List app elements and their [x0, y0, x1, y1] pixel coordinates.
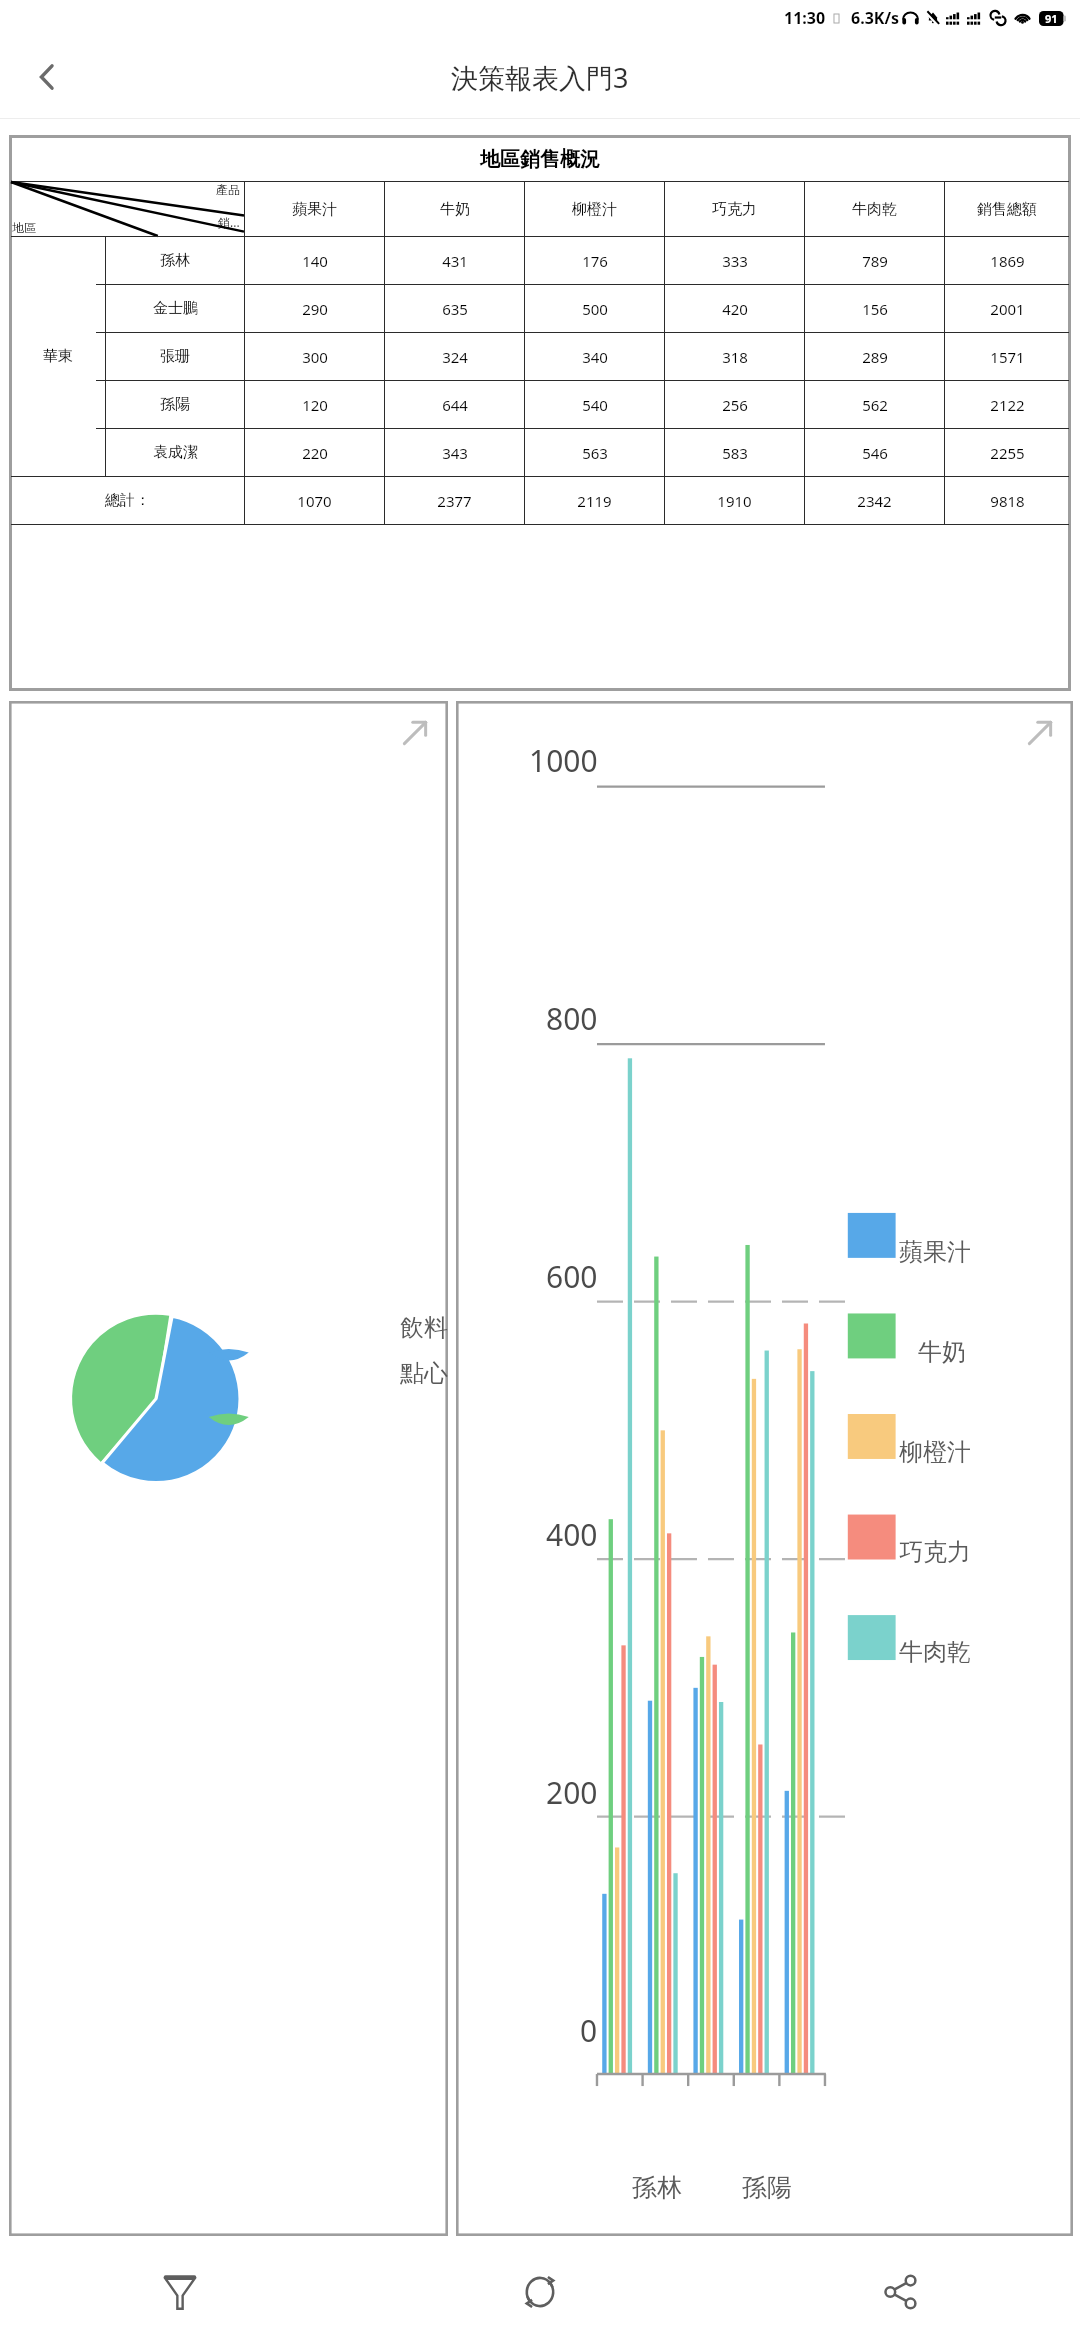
- staticText: 6.3K/s: [851, 7, 900, 29]
- staticText: 牛肉乾: [899, 1637, 971, 1667]
- staticText: 11:30: [784, 7, 826, 29]
- staticText: 176: [582, 251, 608, 271]
- staticText: 2122: [990, 395, 1025, 415]
- staticText: 324: [442, 347, 468, 367]
- staticText: 2377: [437, 491, 472, 511]
- staticText: 140: [302, 251, 328, 271]
- staticText: 400: [546, 1514, 598, 1555]
- staticText: 牛肉乾: [852, 200, 897, 219]
- staticText: 1869: [990, 251, 1025, 271]
- staticText: 431: [442, 251, 468, 271]
- staticText: 銷...: [218, 214, 240, 230]
- staticText: 256: [722, 395, 748, 415]
- staticText: 產品: [216, 182, 240, 197]
- button[interactable]: 1000: [456, 701, 1073, 2236]
- staticText: 540: [582, 395, 608, 415]
- staticText: 孫林: [632, 2172, 682, 2203]
- staticText: 地區: [12, 220, 36, 235]
- staticText: 500: [582, 299, 608, 319]
- staticText: 600: [546, 1256, 598, 1297]
- staticText: 蘋果汁: [292, 200, 337, 219]
- staticText: 點心: [400, 1358, 448, 1388]
- button[interactable]: Refresh: [360, 2244, 720, 2340]
- staticText: 0: [580, 2010, 598, 2051]
- staticText: 柳橙汁: [572, 200, 617, 219]
- staticText: 800: [546, 998, 598, 1039]
- staticText: 1000: [529, 740, 598, 781]
- staticText: 巧克力: [899, 1537, 971, 1567]
- button[interactable]: Expand: [1023, 716, 1057, 750]
- button[interactable]: Expand: [9, 701, 448, 2236]
- staticText: 蘋果汁: [899, 1237, 971, 1267]
- staticText: 孫陽: [160, 395, 190, 414]
- staticText: 總計：: [105, 491, 150, 510]
- staticText: 張珊: [160, 347, 190, 366]
- staticText: 飲料: [400, 1313, 448, 1343]
- staticText: 340: [582, 347, 608, 367]
- staticText: 220: [302, 443, 328, 463]
- staticText: 583: [722, 443, 748, 463]
- button[interactable]: Share: [720, 2244, 1080, 2340]
- staticText: 華東: [43, 347, 73, 366]
- staticText: 200: [546, 1772, 598, 1813]
- staticText: 156: [862, 299, 888, 319]
- staticText: 91: [1045, 11, 1058, 26]
- staticText: 袁成潔: [153, 443, 198, 462]
- staticText: 銷售總額: [977, 200, 1037, 219]
- staticText: 孫陽: [742, 2172, 792, 2203]
- staticText: 2255: [990, 443, 1025, 463]
- staticText: 318: [722, 347, 748, 367]
- staticText: 120: [302, 395, 328, 415]
- button[interactable]: Filter: [0, 2244, 360, 2340]
- staticText: 300: [302, 347, 328, 367]
- staticText: 2001: [990, 299, 1025, 319]
- staticText: 1910: [717, 491, 752, 511]
- staticText: 290: [302, 299, 328, 319]
- button[interactable]: 地區銷售概況: [9, 135, 1071, 691]
- button[interactable]: Expand: [398, 716, 432, 750]
- staticText: 金士鵬: [153, 299, 198, 318]
- staticText: 柳橙汁: [899, 1437, 971, 1467]
- staticText: 635: [442, 299, 468, 319]
- staticText: 789: [862, 251, 888, 271]
- staticText: 1571: [990, 347, 1025, 367]
- staticText: 546: [862, 443, 888, 463]
- staticText: 420: [722, 299, 748, 319]
- staticText: 2342: [857, 491, 892, 511]
- staticText: 343: [442, 443, 468, 463]
- staticText: 牛奶: [440, 200, 470, 219]
- staticText: 562: [862, 395, 888, 415]
- staticText: 9818: [990, 491, 1025, 511]
- staticText: 289: [862, 347, 888, 367]
- staticText: 563: [582, 443, 608, 463]
- staticText: 地區銷售概況: [480, 147, 600, 172]
- staticText: 牛奶: [918, 1337, 966, 1367]
- staticText: 孫林: [160, 251, 190, 270]
- staticText: 2119: [577, 491, 612, 511]
- staticText: 決策報表入門3: [451, 59, 629, 96]
- staticText: 333: [722, 251, 748, 271]
- button[interactable]: Back: [18, 48, 76, 106]
- staticText: 1070: [297, 491, 332, 511]
- staticText: 巧克力: [712, 200, 757, 219]
- staticText: 644: [442, 395, 468, 415]
